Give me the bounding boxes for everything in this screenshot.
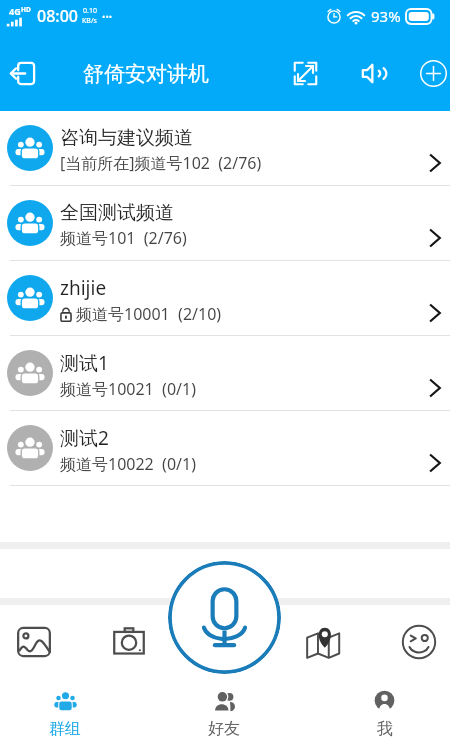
button[interactable]: Map: [302, 621, 344, 663]
staticText: KB/s: [82, 16, 97, 26]
button[interactable]: 测试1: [0, 336, 450, 411]
button[interactable]: Volume: [347, 51, 391, 95]
button[interactable]: Fullscreen: [283, 51, 327, 95]
staticText: 测试1: [60, 350, 109, 376]
button[interactable]: Camera: [108, 621, 150, 663]
staticText: 好友: [208, 719, 240, 739]
button[interactable]: Add: [411, 51, 450, 95]
staticText: 频道号10021 (0/1): [60, 378, 196, 400]
button[interactable]: 全国测试频道: [0, 186, 450, 261]
button[interactable]: zhijie: [0, 261, 450, 336]
staticText: 0.10: [83, 6, 97, 16]
staticText: 93%: [371, 6, 401, 26]
staticText: 频道号10001 (2/10): [76, 303, 222, 325]
staticText: 舒倚安对讲机: [83, 61, 209, 87]
staticText: 测试2: [60, 425, 109, 451]
staticText: 群组: [49, 719, 81, 739]
button[interactable]: 测试2: [0, 411, 450, 486]
staticText: zhijie: [60, 275, 107, 301]
staticText: 08:00: [37, 5, 78, 27]
staticText: 频道号10022 (0/1): [60, 453, 196, 475]
staticText: [当前所在]频道号102 (2/76): [60, 152, 262, 174]
staticText: 频道号101 (2/76): [60, 227, 187, 249]
button[interactable]: 群组: [25, 682, 105, 740]
staticText: 咨询与建议频道: [60, 126, 193, 150]
staticText: •••: [102, 10, 113, 22]
button[interactable]: Image: [13, 621, 55, 663]
button[interactable]: Emoji: [398, 621, 440, 663]
button[interactable]: Push to talk: [168, 561, 281, 674]
button[interactable]: 我: [345, 682, 425, 740]
staticText: 我: [377, 719, 393, 739]
staticText: 全国测试频道: [60, 201, 174, 225]
staticText: 4G: [9, 5, 21, 17]
staticText: HD: [21, 5, 31, 14]
button[interactable]: 好友: [184, 682, 264, 740]
button[interactable]: Exit: [0, 51, 44, 95]
button[interactable]: 咨询与建议频道: [0, 111, 450, 186]
